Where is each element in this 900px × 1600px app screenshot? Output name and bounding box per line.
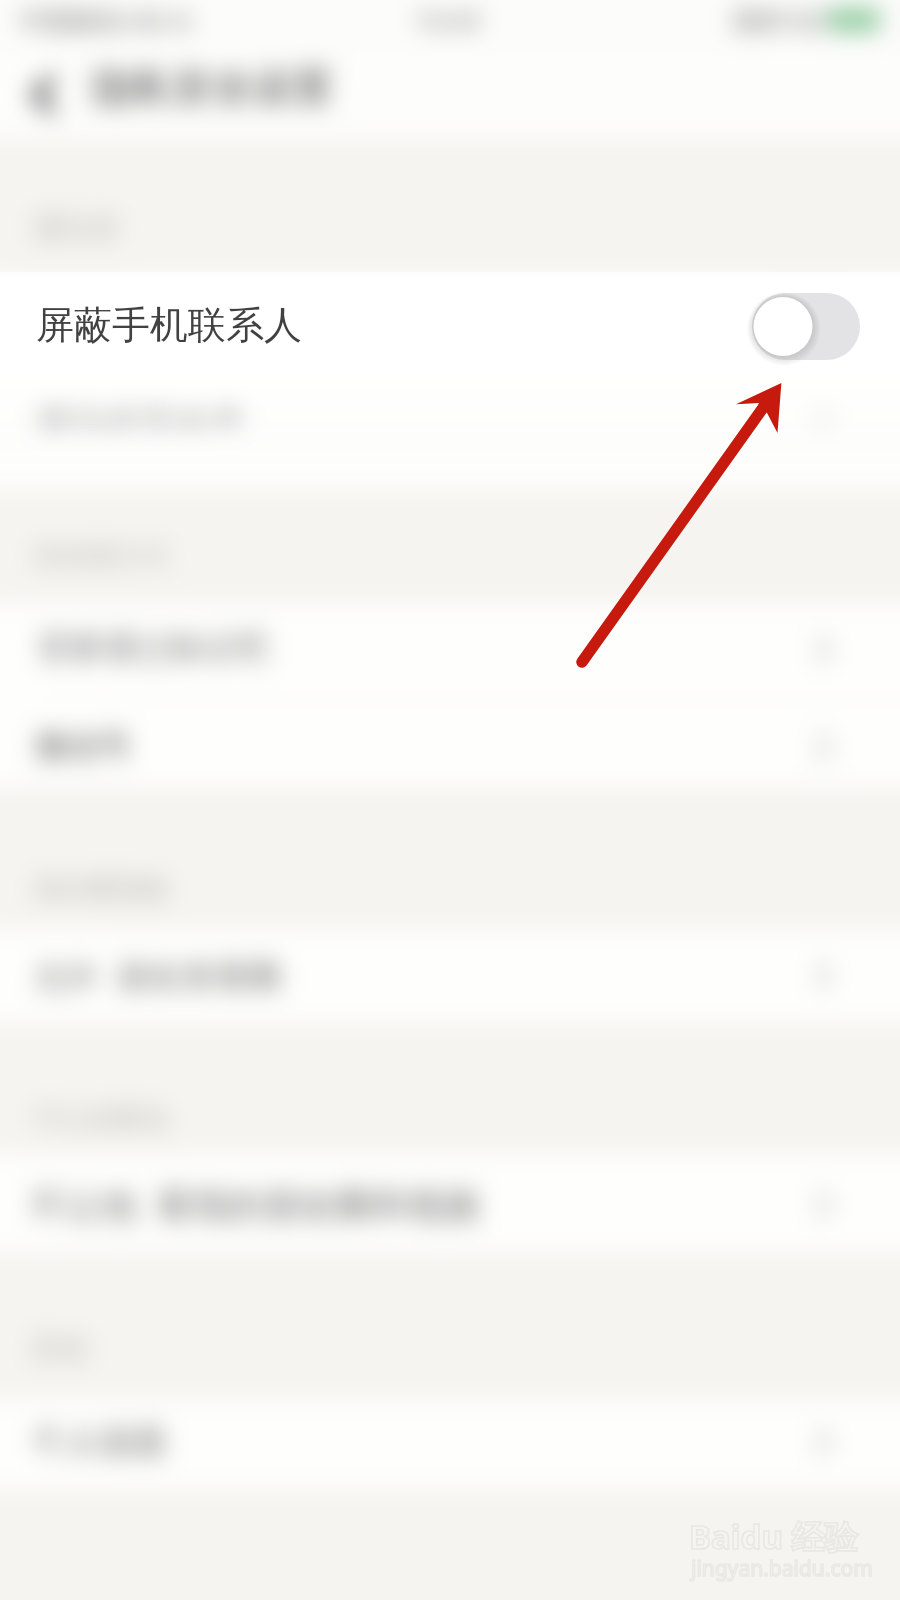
staticText: 10:43 bbox=[414, 2, 481, 37]
staticText: 微信号 bbox=[35, 726, 131, 766]
button[interactable]: Back bbox=[8, 52, 80, 138]
button[interactable]: 不让他看我的朋友圈和视频动态 bbox=[0, 1155, 900, 1251]
staticText: 闹钟 82% bbox=[733, 2, 844, 38]
staticText: 隐私安全设置 bbox=[93, 62, 333, 112]
button[interactable]: 屏蔽手机联系人 switch, off bbox=[742, 283, 870, 371]
staticText: 需要通过验证吧 bbox=[37, 627, 268, 669]
button[interactable]: 个人信息 bbox=[0, 1400, 900, 1488]
staticText: 允许 朋友查看圈 bbox=[33, 953, 282, 998]
button[interactable]: 屏蔽手机联系人 bbox=[0, 272, 900, 482]
staticText: 屏蔽手机联系人 bbox=[36, 301, 302, 349]
staticText: 通讯录黑名单 bbox=[35, 390, 245, 434]
staticText: Baidu 经验 bbox=[689, 1514, 858, 1559]
button[interactable]: 微信号 bbox=[0, 701, 900, 786]
button[interactable]: 允许朋友查看朋友圈 bbox=[0, 930, 900, 1022]
staticText: 不让他 看我的朋友圈和视频 bbox=[29, 1180, 480, 1229]
staticText: 个人信息 bbox=[31, 1420, 167, 1463]
button[interactable]: 屏蔽手机联系人 bbox=[0, 277, 900, 370]
staticText: jingyan.baidu.com bbox=[691, 1554, 873, 1583]
staticText: 中国移动 4G ılı bbox=[20, 2, 192, 38]
button[interactable]: 通讯录黑名单 bbox=[0, 371, 900, 465]
button[interactable]: 需要通过验证 bbox=[0, 604, 900, 700]
staticText: 屏蔽手机联系人 bbox=[35, 302, 294, 349]
